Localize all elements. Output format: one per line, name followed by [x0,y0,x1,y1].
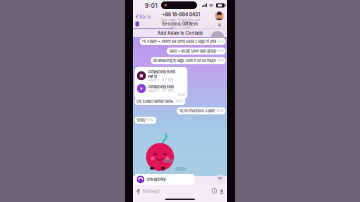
button[interactable]: Back [134,12,153,21]
staticText: 9:01 [217,40,223,43]
button[interactable]: Attach file [135,188,140,194]
staticText: 9:02 [147,118,154,122]
button[interactable]: OmayOnly Feel [137,84,185,93]
staticText: 9:01 [217,49,223,53]
button[interactable]: Add Adam to Contacts [133,29,227,37]
button[interactable]: OmayOnly Best Party [137,69,185,82]
staticText: OmayOnly [146,177,165,182]
button[interactable]: Stickers [212,188,217,193]
staticText: Tq so muchiiiiii Adam [179,109,215,113]
staticText: Add Adam to Contacts [157,30,202,36]
staticText: +86 18-084 0431 [162,12,200,17]
staticText: 9:01 [217,59,223,62]
staticText: adam j · 4.2 MB [148,78,173,82]
staticText: Sayo • dicati save dari group [169,49,216,53]
staticText: last seen 2 minutes ago [161,18,200,22]
staticText: 9:02 [176,100,183,103]
staticText: 9:02 [178,93,185,97]
button[interactable]: Collapse player [216,174,224,182]
staticText: 9:02 [216,109,223,113]
staticText: OmayOnly Best Party [148,69,175,79]
staticText: Back [139,13,151,20]
button[interactable]: Cancel upload [217,23,221,27]
staticText: Sma2 [137,118,146,122]
staticText: adam j · 3.7 MB [148,89,173,92]
button[interactable]: OmayOnly [134,174,194,185]
staticText: Sending Gift Item [162,21,198,26]
staticText: Ok sudah hantar haha.. [137,99,175,104]
button[interactable]: Record voice message [219,188,223,193]
button[interactable]: Scroll to latest message [211,31,224,44]
staticText: OmayOnly Feel [148,84,174,89]
staticText: Hi Adam ~, boleh ba send saya 2 lagu ni … [142,39,216,44]
staticText: So amazing ru lagu love it so so much [153,58,216,63]
button[interactable]: Contact profile [215,12,224,20]
staticText: 43% · 2.1 MB [170,27,190,31]
staticText: 9:01 [145,3,157,9]
staticText: Message [142,189,159,194]
